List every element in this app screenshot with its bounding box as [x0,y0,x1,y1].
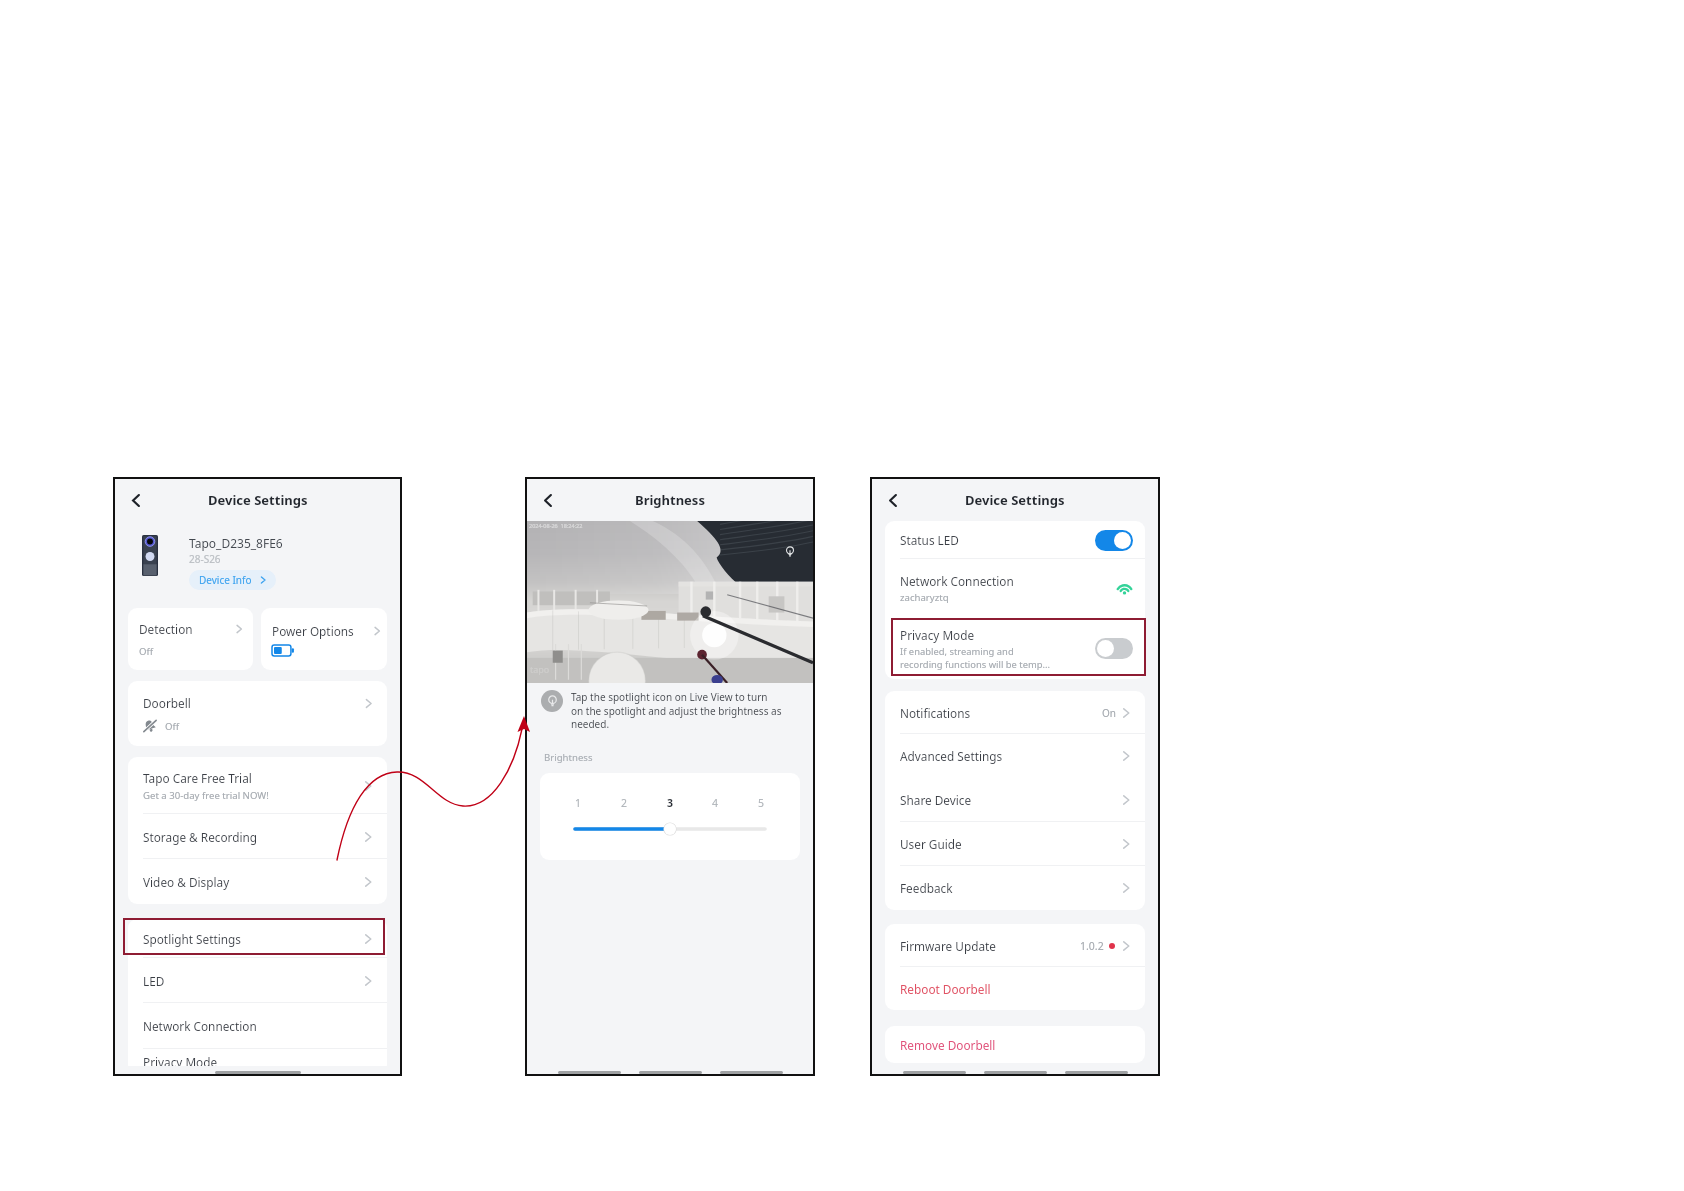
button[interactable]: Video & Display [128,859,387,904]
button[interactable]: User Guide [885,822,1145,866]
staticText: 3 [667,796,674,810]
staticText: tapo [530,663,550,675]
button[interactable]: Doorbell [128,681,387,746]
button[interactable]: LED [128,958,387,1003]
staticText: Get a 30-day free trial NOW! [143,789,269,802]
staticText: Status LED [900,532,1095,548]
staticText: Tapo_D235_8FE6 [189,535,283,551]
staticText: Network Connection [900,573,1014,589]
staticText: Notifications [900,705,971,721]
staticText: Share Device [900,792,972,808]
button[interactable]: Device Info [189,570,276,590]
button[interactable]: Back [881,488,905,512]
button[interactable]: Privacy Mode [128,1049,387,1074]
staticText: Advanced Settings [900,748,1003,764]
button[interactable]: Status LED, on [1095,530,1133,551]
button[interactable]: Brightness level 3 of 5 [575,822,765,836]
staticText: Privacy Mode [143,1054,218,1070]
button[interactable]: Share Device [885,778,1145,822]
staticText: 2024-08-26 18:24:22 [529,522,583,529]
button[interactable]: Network Connection [128,1003,387,1049]
button[interactable]: Spotlight Settings [128,919,387,958]
button[interactable]: Reboot Doorbell [885,967,1145,1010]
staticText: Remove Doorbell [900,1037,996,1053]
staticText: Brightness [635,491,705,509]
button[interactable]: Feedback [885,866,1145,910]
staticText: 2 [621,796,628,810]
staticText: 28-S26 [189,552,221,566]
staticText: Tap the spotlight icon on Live View to t… [571,690,782,730]
staticText: Brightness [544,751,593,764]
button[interactable]: Tapo Care Free Trial [128,757,387,814]
staticText: Doorbell [143,695,191,711]
button[interactable]: Privacy Mode [885,618,1145,679]
staticText: Video & Display [143,874,230,890]
staticText: 1.0.2 [1080,939,1104,953]
staticText: Firmware Update [900,938,1080,954]
staticText: Spotlight Settings [143,931,241,947]
button[interactable]: Network Connection [885,559,1145,618]
staticText: Tapo Care Free Trial [143,770,252,786]
staticText: Storage & Recording [143,829,258,845]
staticText: Device Info [199,573,252,587]
button[interactable]: Spotlight [784,546,796,558]
button[interactable]: Notifications [885,691,1145,734]
staticText: Network Connection [143,1018,257,1034]
button[interactable]: Remove Doorbell [885,1026,1145,1063]
staticText: Feedback [900,880,953,896]
button[interactable]: Back [536,488,560,512]
staticText: Device Settings [208,491,308,509]
staticText: Privacy Mode [900,627,975,643]
button[interactable]: Storage & Recording [128,814,387,859]
button[interactable]: Detection [128,608,253,670]
button[interactable]: Power Options [261,608,387,670]
staticText: Reboot Doorbell [900,981,991,997]
staticText: Power Options [272,623,354,639]
button[interactable]: Status LED [885,521,1145,559]
staticText: 1 [575,796,582,810]
staticText: User Guide [900,836,962,852]
staticText: Off [165,720,180,733]
staticText: Device Settings [965,491,1065,509]
button[interactable]: Advanced Settings [885,734,1145,778]
staticText: Detection [139,621,193,637]
staticText: zacharyztq [900,591,949,604]
staticText: 5 [758,796,765,810]
staticText: Off [139,645,154,658]
staticText: LED [143,973,165,989]
button[interactable]: Back [124,488,148,512]
button[interactable]: Firmware Update [885,924,1145,967]
staticText: If enabled, streaming and recording func… [900,645,1051,670]
staticText: 4 [712,796,719,810]
button[interactable]: Privacy Mode, off [1095,638,1133,659]
staticText: On [1102,706,1116,720]
